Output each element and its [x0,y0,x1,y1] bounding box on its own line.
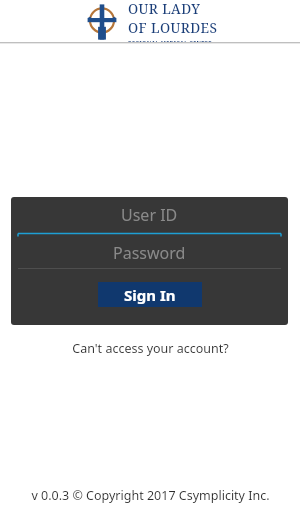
staticText: v 0.0.3 © Copyright 2017 Csymplicity Inc… [31,487,270,504]
staticText: OF LOURDES [128,19,218,37]
staticText: REGIONAL MEDICAL CENTER [128,39,213,43]
staticText: Can't access your account? [72,340,229,357]
staticText: Sign In [124,285,176,305]
staticText: User ID [121,204,178,226]
button[interactable]: User ID [11,197,288,232]
staticText: OUR LADY [128,0,201,18]
button[interactable]: Sign In [98,282,202,307]
button[interactable]: Password [11,237,288,268]
button[interactable]: Can't access your account? [0,338,300,358]
staticText: Password [113,242,186,264]
